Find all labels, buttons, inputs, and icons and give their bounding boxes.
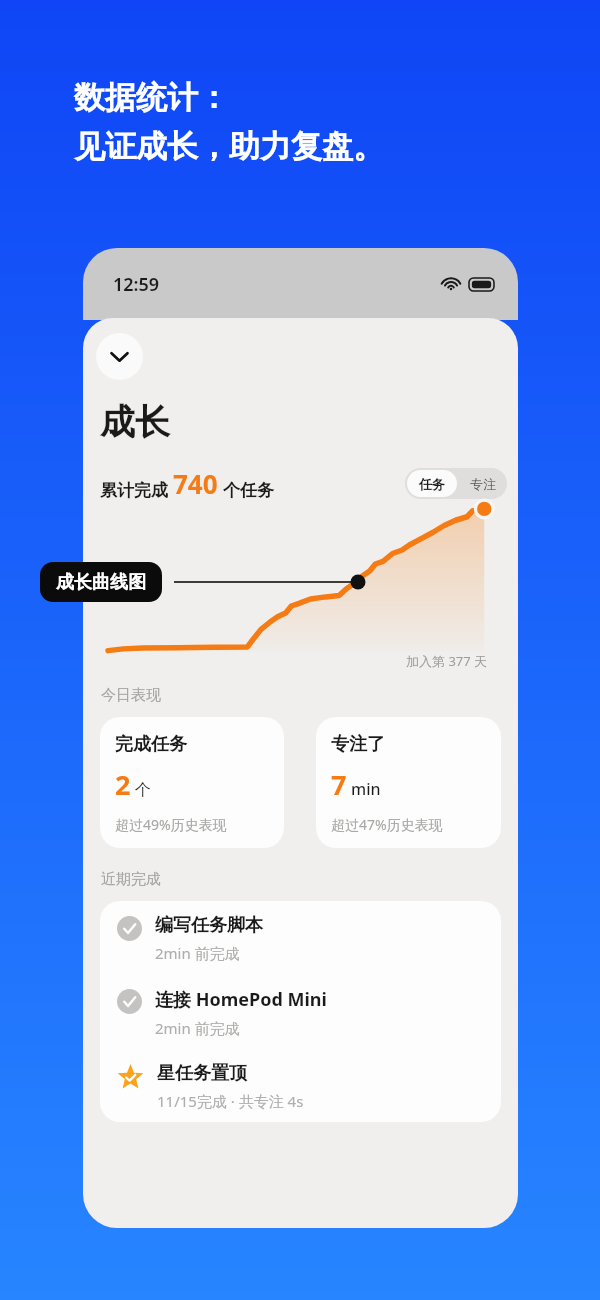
staticText: 任务: [419, 476, 445, 492]
staticText: 近期完成: [101, 870, 161, 889]
staticText: 专注了: [331, 733, 385, 756]
staticText: 数据统计：: [74, 78, 229, 117]
staticText: 成长曲线图: [56, 571, 146, 594]
staticText: 2min 前完成: [155, 1018, 240, 1038]
staticText: 专注: [470, 476, 496, 492]
staticText: 超过47%历史表现: [331, 815, 443, 834]
staticText: 星任务置顶: [157, 1062, 247, 1085]
staticText: 加入第 377 天: [406, 652, 488, 670]
staticText: 7: [331, 766, 347, 803]
staticText: 成长: [100, 400, 170, 444]
staticText: 见证成长，助力复盘。: [74, 127, 384, 166]
button[interactable]: 完成任务: [100, 717, 284, 848]
staticText: 2min 前完成: [155, 943, 240, 963]
button[interactable]: 连接 HomePod Mini: [100, 974, 501, 1049]
staticText: 超过49%历史表现: [115, 815, 227, 834]
button[interactable]: 星任务置顶: [100, 1049, 501, 1122]
staticText: 个: [135, 780, 151, 800]
staticText: 11/15完成 · 共专注 4s: [157, 1091, 304, 1111]
button[interactable]: 编写任务脚本: [100, 901, 501, 974]
button[interactable]: 任务: [407, 470, 457, 497]
staticText: 740: [173, 466, 218, 501]
staticText: 今日表现: [101, 686, 161, 705]
staticText: 2: [115, 766, 131, 803]
staticText: 累计完成: [100, 480, 168, 501]
staticText: 编写任务脚本: [155, 914, 263, 937]
button[interactable]: Collapse: [96, 333, 143, 380]
staticText: 个任务: [223, 480, 274, 501]
staticText: 12:59: [113, 272, 160, 297]
button[interactable]: 专注了: [316, 717, 501, 848]
button[interactable]: 专注: [459, 468, 507, 499]
button[interactable]: 成长曲线图: [40, 562, 162, 602]
staticText: 完成任务: [115, 733, 187, 756]
staticText: 连接 HomePod Mini: [155, 987, 327, 1012]
staticText: min: [351, 778, 381, 800]
